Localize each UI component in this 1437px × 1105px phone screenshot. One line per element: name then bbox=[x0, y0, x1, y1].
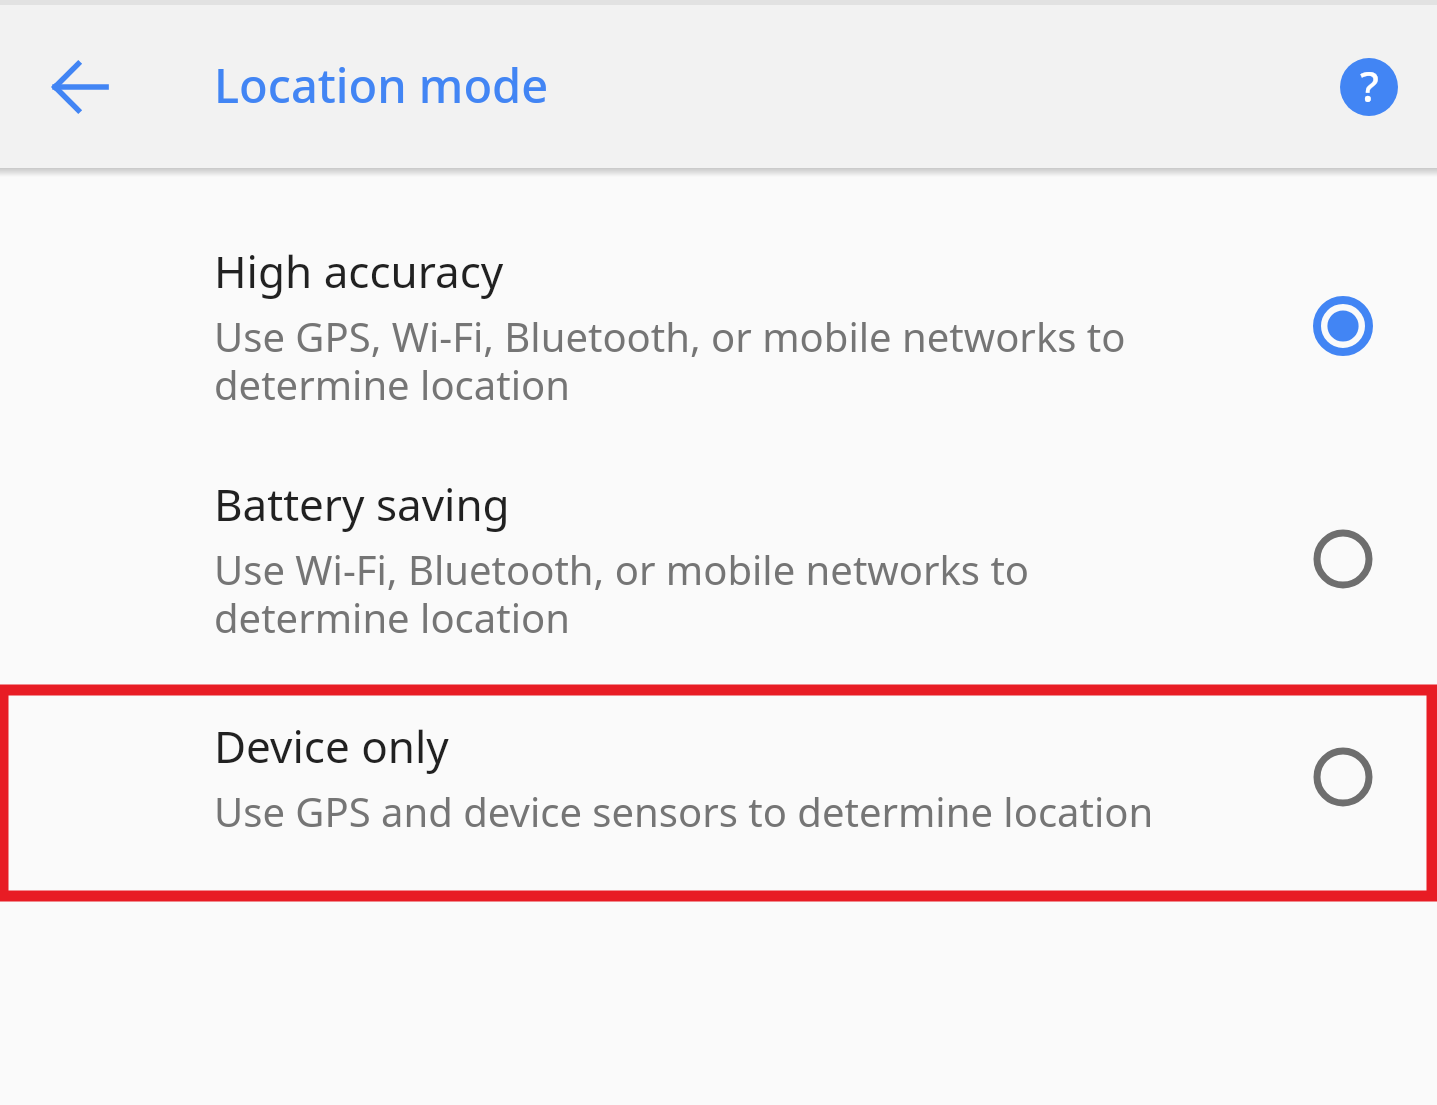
staticText: ? bbox=[1360, 58, 1379, 114]
button[interactable]: Back bbox=[28, 35, 132, 139]
staticText: Use GPS and device sensors to determine … bbox=[214, 784, 1154, 838]
button[interactable]: Battery saving bbox=[0, 445, 1437, 673]
staticText: Device only bbox=[214, 716, 449, 776]
button[interactable]: High accuracy bbox=[0, 207, 1437, 445]
staticText: Use Wi-Fi, Bluetooth, or mobile networks… bbox=[214, 542, 1219, 645]
staticText: High accuracy bbox=[214, 241, 504, 301]
button[interactable]: Device only bbox=[0, 673, 1437, 881]
staticText: Location mode bbox=[214, 53, 549, 117]
staticText: Battery saving bbox=[214, 474, 510, 534]
staticText: Use GPS, Wi-Fi, Bluetooth, or mobile net… bbox=[214, 309, 1219, 412]
button[interactable]: Help bbox=[1321, 39, 1417, 135]
